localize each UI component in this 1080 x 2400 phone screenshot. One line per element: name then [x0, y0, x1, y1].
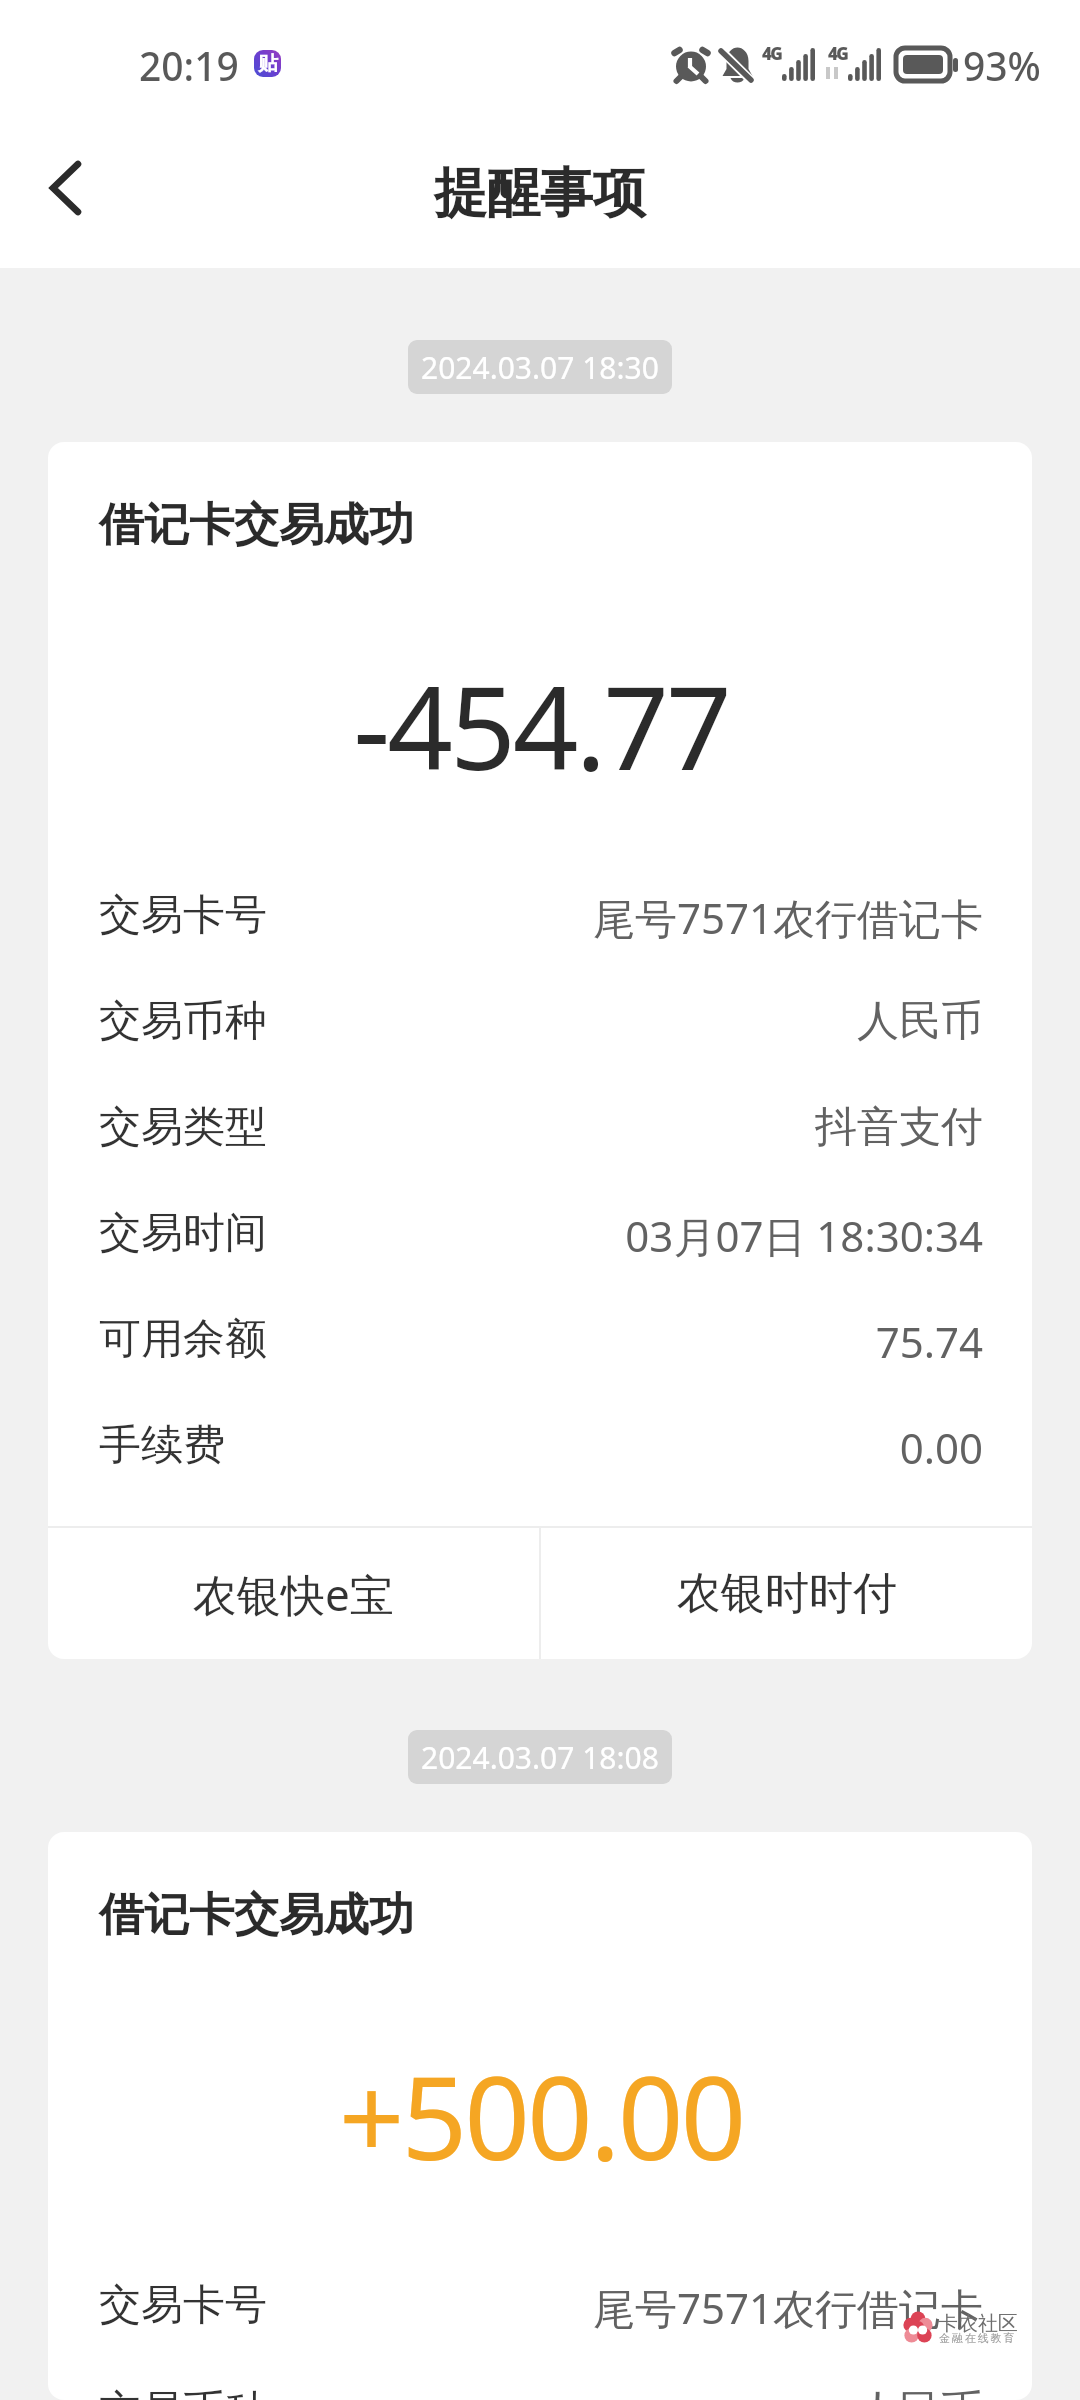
- button[interactable]: 借记卡交易成功: [48, 442, 1032, 1659]
- staticText: 贴: [258, 51, 278, 76]
- button[interactable]: 农银时时付: [541, 1528, 1032, 1659]
- staticText: 20:19: [139, 39, 239, 92]
- staticText: 人民币: [99, 995, 983, 1048]
- staticText: 4G: [762, 42, 782, 65]
- staticText: 借记卡交易成功: [99, 497, 414, 554]
- staticText: 4G: [828, 42, 848, 65]
- staticText: 2024.03.07 18:30: [421, 347, 659, 388]
- staticText: -454.77: [99, 647, 983, 804]
- staticText: 93%: [963, 39, 1041, 92]
- staticText: 手续费: [99, 1419, 225, 1472]
- staticText: 人民币: [99, 2385, 983, 2400]
- staticText: 可用余额: [99, 1313, 267, 1366]
- staticText: 尾号7571农行借记卡: [99, 2279, 983, 2336]
- button[interactable]: 农银快e宝: [48, 1528, 539, 1659]
- staticText: 提醒事项: [0, 160, 1080, 227]
- staticText: 75.74: [99, 1313, 983, 1370]
- staticText: 交易币种: [99, 2385, 267, 2400]
- staticText: 抖音支付: [99, 1101, 983, 1154]
- staticText: 交易时间: [99, 1207, 267, 1260]
- staticText: 农银快e宝: [193, 1564, 394, 1624]
- staticText: 交易卡号: [99, 2279, 267, 2332]
- staticText: 尾号7571农行借记卡: [99, 889, 983, 946]
- button[interactable]: 借记卡交易成功: [48, 1832, 1032, 2400]
- staticText: 农银时时付: [677, 1566, 897, 1621]
- staticText: 金融在线教育: [939, 2331, 1017, 2345]
- staticText: 03月07日 18:30:34: [99, 1207, 983, 1264]
- button[interactable]: Back: [20, 143, 110, 233]
- staticText: 借记卡交易成功: [99, 1887, 414, 1944]
- staticText: +500.00: [99, 2037, 983, 2194]
- staticText: 交易币种: [99, 995, 267, 1048]
- staticText: 交易卡号: [99, 889, 267, 942]
- staticText: 0.00: [99, 1419, 983, 1476]
- staticText: 交易类型: [99, 1101, 267, 1154]
- staticText: 卡农社区: [938, 2311, 1018, 2336]
- staticText: 2024.03.07 18:08: [421, 1737, 659, 1778]
